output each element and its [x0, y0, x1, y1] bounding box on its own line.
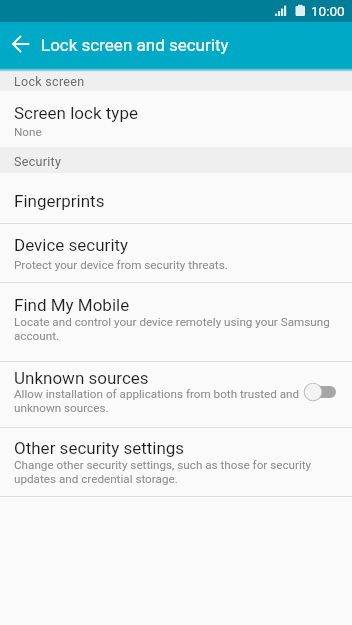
button[interactable]: Fingerprints [0, 173, 352, 224]
staticText: Screen lock type [14, 103, 138, 123]
button[interactable]: Screen lock type [0, 91, 352, 147]
button[interactable]: Device security [0, 224, 352, 283]
staticText: Device security [14, 235, 129, 255]
staticText: account. [14, 329, 60, 343]
staticText: Other security settings [14, 438, 185, 458]
button[interactable]: Find My Mobile [0, 283, 352, 362]
button[interactable]: Unknown sources [0, 362, 352, 428]
button[interactable] [0, 22, 40, 68]
button[interactable] [300, 379, 340, 405]
staticText: unknown sources. [14, 401, 109, 415]
staticText: Protect your device from security threat… [14, 258, 228, 272]
staticText: Security [14, 154, 62, 169]
staticText: Find My Mobile [14, 295, 130, 315]
staticText: Lock screen [14, 74, 85, 89]
staticText: updates and credential storage. [14, 472, 178, 486]
button[interactable]: Other security settings [0, 428, 352, 497]
staticText: Fingerprints [14, 191, 105, 211]
staticText: Allow installation of applications from … [14, 387, 300, 401]
staticText: Change other security settings, such as … [14, 458, 312, 472]
staticText: Lock screen and security [41, 35, 229, 55]
staticText: Unknown sources [14, 368, 149, 388]
staticText: Locate and control your device remotely … [14, 315, 330, 329]
staticText: 10:00 [311, 3, 345, 19]
staticText: None [14, 125, 42, 139]
